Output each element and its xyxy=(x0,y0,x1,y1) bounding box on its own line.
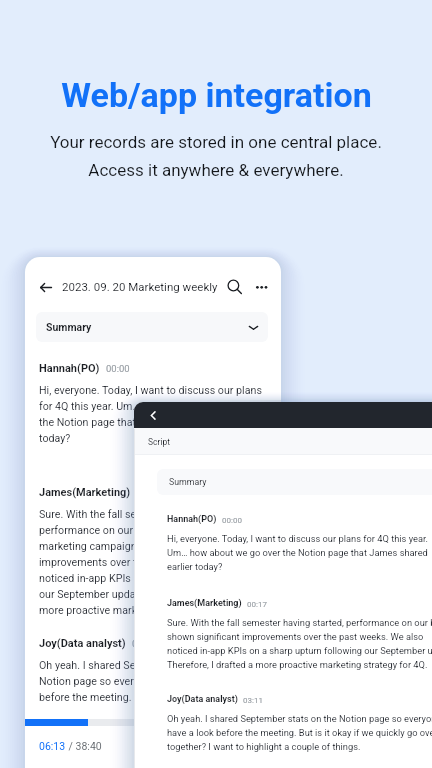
staticText: 03:11 xyxy=(243,696,263,705)
staticText: Hannah(PO) xyxy=(39,362,100,375)
staticText: Script xyxy=(148,437,170,447)
staticText: Joy(Data analyst) xyxy=(39,637,126,650)
button[interactable]: Summary xyxy=(36,312,268,342)
staticText: Joy(Data analyst) xyxy=(167,694,238,705)
button[interactable]: Back xyxy=(147,410,158,421)
button[interactable]: Search xyxy=(227,278,243,294)
staticText: Hannah(PO) xyxy=(167,514,217,525)
staticText: 2023. 09. 20 Marketing weekly xyxy=(62,280,218,293)
staticText: 00:00 xyxy=(106,363,130,374)
staticText: Oh yeah. I shared September stats on the… xyxy=(167,713,432,752)
staticText: Summary xyxy=(46,321,92,333)
staticText: 00:00 xyxy=(222,516,242,525)
staticText: Summary xyxy=(169,477,207,487)
staticText: James(Marketing) xyxy=(167,598,242,609)
staticText: Your records are stored in one central p… xyxy=(50,132,382,180)
button[interactable]: More options xyxy=(256,278,270,294)
staticText: 00:17 xyxy=(247,600,267,609)
staticText: Web/app integration xyxy=(61,75,372,115)
button[interactable]: Back xyxy=(38,279,53,294)
staticText: 03:11 xyxy=(132,638,156,649)
staticText: / 38:40 xyxy=(66,740,102,752)
staticText: James(Marketing) xyxy=(39,486,131,499)
button[interactable]: Summary xyxy=(157,469,432,495)
staticText: Sure. With the fall semester having star… xyxy=(39,508,264,616)
staticText: Sure. With the fall semester having star… xyxy=(167,617,432,670)
staticText: 06:13 xyxy=(39,740,66,752)
staticText: Oh yeah. I shared September stats on the… xyxy=(39,659,256,703)
staticText: Hi, everyone. Today, I want to discuss o… xyxy=(39,384,262,444)
staticText: Hi, everyone. Today, I want to discuss o… xyxy=(167,533,429,572)
